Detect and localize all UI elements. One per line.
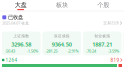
staticText: 深证成指 (54, 34, 70, 38)
staticText: -3.59% (108, 48, 119, 54)
staticText: -50.43 (5, 48, 15, 54)
staticText: 已收盘 (8, 14, 23, 21)
staticText: 交易日历 (103, 21, 119, 25)
staticText: 3296.58 (11, 41, 31, 48)
staticText: 板块 (56, 1, 68, 9)
staticText: 上证指数 (13, 34, 29, 38)
button[interactable]: 板块 (41, 0, 83, 11)
staticText: -2.91% (67, 48, 78, 54)
staticText: 9364.50 (52, 41, 72, 48)
button[interactable]: 个股 (83, 0, 124, 11)
staticText: -281.25 (45, 48, 57, 54)
staticText: -70.24 (86, 48, 96, 54)
staticText: 819 (111, 57, 120, 63)
button[interactable]: 819 (111, 57, 122, 63)
button[interactable]: 交易日历 (103, 21, 122, 25)
button[interactable]: 上证指数 (2, 31, 40, 55)
button[interactable]: 深证成指 (42, 31, 81, 55)
staticText: 1264 (4, 57, 17, 63)
staticText: 1887.21 (92, 41, 112, 48)
staticText: 大盘 (15, 1, 27, 9)
button[interactable]: 大盘 (0, 0, 41, 11)
button[interactable]: 创业板指 (83, 31, 121, 55)
staticText: 创业板指 (94, 34, 110, 38)
staticText: -1.50% (27, 48, 38, 54)
staticText: 个股 (97, 1, 109, 9)
staticText: 2025-04-07 收盘 (2, 20, 29, 26)
